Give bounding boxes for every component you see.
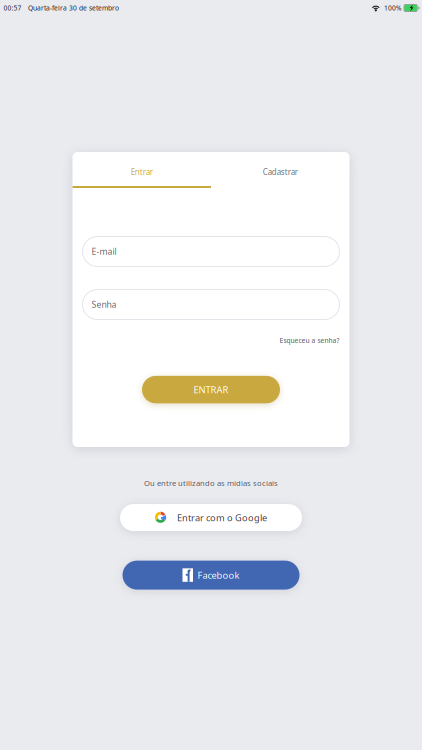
staticText: E-mail	[91, 246, 116, 257]
staticText: Senha	[91, 299, 116, 310]
button[interactable]: Cadastrar	[211, 152, 349, 188]
button[interactable]: Entrar com o Google	[120, 504, 302, 531]
staticText: Esqueceu a senha?	[279, 336, 339, 345]
staticText: Cadastrar	[263, 166, 298, 177]
staticText: Quarta-feira 30 de setembro	[28, 4, 119, 12]
staticText: Ou entre utilizando as mídias sociais	[144, 478, 278, 488]
button[interactable]: Esqueceu a senha?	[279, 336, 339, 345]
staticText: 00:57	[3, 4, 21, 12]
button[interactable]: ENTRAR	[142, 376, 280, 403]
staticText: ENTRAR	[193, 383, 228, 396]
staticText: 100%	[384, 4, 402, 12]
staticText: Facebook	[197, 569, 239, 581]
button[interactable]: Facebook	[122, 561, 299, 590]
staticText: Entrar	[131, 166, 153, 177]
button[interactable]: Entrar	[72, 152, 211, 188]
staticText: Entrar com o Google	[177, 511, 267, 524]
